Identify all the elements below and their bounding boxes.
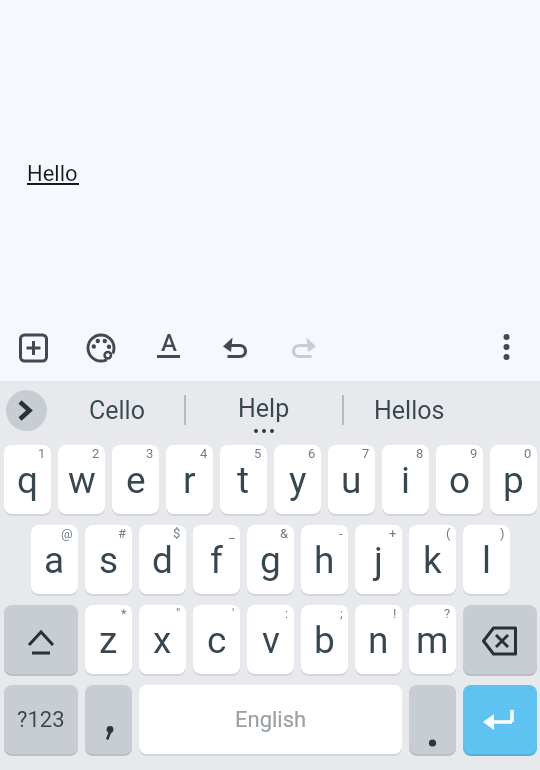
staticText: ) xyxy=(500,526,505,541)
button[interactable]: Hellos xyxy=(343,381,476,440)
button[interactable]: Cello xyxy=(49,381,184,440)
button[interactable] xyxy=(283,327,324,368)
staticText: ? xyxy=(444,606,451,621)
staticText: ! xyxy=(393,606,397,621)
button[interactable]: w xyxy=(58,445,105,514)
staticText: k xyxy=(423,539,442,582)
staticText: b xyxy=(314,619,335,662)
staticText: r xyxy=(183,459,196,502)
button[interactable]: i xyxy=(382,445,429,514)
staticText: f xyxy=(210,539,223,582)
button[interactable]: a xyxy=(31,525,78,594)
button[interactable] xyxy=(486,327,527,368)
button[interactable]: t xyxy=(220,445,267,514)
button[interactable]: b xyxy=(301,605,348,674)
staticText: ?123 xyxy=(17,707,65,733)
button[interactable]: c xyxy=(193,605,240,674)
staticText: 6 xyxy=(308,446,316,461)
button[interactable]: r xyxy=(166,445,213,514)
staticText: 2 xyxy=(92,446,100,461)
staticText: _ xyxy=(229,526,235,541)
staticText: # xyxy=(118,526,127,541)
staticText: o xyxy=(449,459,471,502)
staticText: q xyxy=(17,459,39,502)
staticText: Hello xyxy=(27,161,78,187)
staticText: 9 xyxy=(470,446,478,461)
staticText: Cello xyxy=(89,396,145,425)
staticText: n xyxy=(368,619,389,662)
staticText: t xyxy=(237,459,250,502)
staticText: Help xyxy=(238,394,290,423)
staticText: e xyxy=(126,459,146,502)
button[interactable] xyxy=(81,327,122,368)
button[interactable] xyxy=(148,327,189,368)
button[interactable]: h xyxy=(301,525,348,594)
staticText: English xyxy=(235,707,307,733)
button[interactable] xyxy=(6,390,47,431)
staticText: 3 xyxy=(146,446,154,461)
staticText: s xyxy=(99,539,119,582)
button[interactable]: n xyxy=(355,605,402,674)
staticText: x xyxy=(153,619,172,662)
button[interactable]: z xyxy=(85,605,132,674)
button[interactable]: k xyxy=(409,525,456,594)
staticText: + xyxy=(389,526,397,541)
button[interactable]: p xyxy=(490,445,537,514)
button[interactable]: q xyxy=(4,445,51,514)
staticText: p xyxy=(503,459,524,502)
button[interactable]: v xyxy=(247,605,294,674)
staticText: j xyxy=(374,539,383,582)
button[interactable]: g xyxy=(247,525,294,594)
staticText: 4 xyxy=(200,446,208,461)
staticText: a xyxy=(44,539,65,582)
staticText: & xyxy=(280,526,289,541)
staticText: ' xyxy=(232,606,235,621)
button[interactable]: s xyxy=(85,525,132,594)
staticText: 8 xyxy=(416,446,424,461)
staticText: y xyxy=(289,459,307,502)
staticText: ; xyxy=(340,606,343,621)
button[interactable]: ?123 xyxy=(4,685,78,754)
staticText: g xyxy=(260,539,281,582)
staticText: d xyxy=(152,539,173,582)
staticText: 7 xyxy=(362,446,370,461)
staticText: ( xyxy=(446,526,451,541)
button[interactable] xyxy=(463,685,537,754)
staticText: A xyxy=(161,329,177,357)
button[interactable] xyxy=(409,685,456,754)
button[interactable] xyxy=(4,605,78,674)
button[interactable]: f xyxy=(193,525,240,594)
staticText: m xyxy=(416,619,449,662)
staticText: u xyxy=(341,459,362,502)
button[interactable] xyxy=(463,605,537,674)
staticText: * xyxy=(121,606,127,621)
button[interactable]: l xyxy=(463,525,510,594)
staticText: w xyxy=(68,459,96,502)
staticText: " xyxy=(176,606,181,621)
button[interactable] xyxy=(215,327,256,368)
button[interactable]: Help xyxy=(185,381,342,440)
button[interactable]: j xyxy=(355,525,402,594)
staticText: : xyxy=(285,606,289,621)
button[interactable]: u xyxy=(328,445,375,514)
staticText: - xyxy=(339,526,343,541)
staticText: i xyxy=(401,459,410,502)
staticText: @ xyxy=(61,526,73,541)
button[interactable] xyxy=(85,685,132,754)
button[interactable]: x xyxy=(139,605,186,674)
staticText: Hellos xyxy=(374,396,445,425)
button[interactable] xyxy=(13,327,54,368)
staticText: v xyxy=(262,619,280,662)
staticText: l xyxy=(482,539,491,582)
button[interactable]: o xyxy=(436,445,483,514)
staticText: z xyxy=(99,619,118,662)
button[interactable]: m xyxy=(409,605,456,674)
staticText: 1 xyxy=(38,446,46,461)
button[interactable]: y xyxy=(274,445,321,514)
button[interactable]: d xyxy=(139,525,186,594)
staticText: 5 xyxy=(254,446,262,461)
staticText: 0 xyxy=(524,446,532,461)
staticText: c xyxy=(207,619,227,662)
button[interactable]: English xyxy=(139,685,402,754)
button[interactable]: e xyxy=(112,445,159,514)
